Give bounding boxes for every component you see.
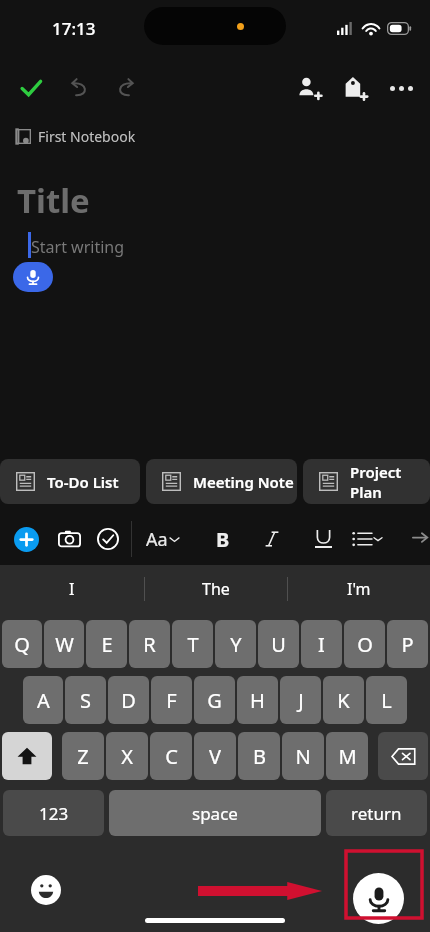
- button[interactable]: Add tag: [334, 67, 376, 109]
- staticText: J: [298, 687, 304, 714]
- button[interactable]: X: [106, 732, 148, 780]
- staticText: P: [401, 631, 414, 658]
- button[interactable]: [254, 521, 290, 557]
- button[interactable]: Z: [62, 732, 104, 780]
- staticText: First Notebook: [38, 127, 136, 146]
- button[interactable]: Dictate: [353, 873, 404, 924]
- button[interactable]: O: [344, 620, 385, 668]
- button[interactable]: W: [44, 620, 84, 668]
- staticText: Start writing: [31, 236, 125, 258]
- button[interactable]: The: [144, 565, 287, 613]
- button[interactable]: To-Do List: [0, 459, 140, 504]
- button[interactable]: List style: [352, 521, 382, 557]
- staticText: Z: [77, 743, 89, 770]
- staticText: S: [80, 687, 91, 714]
- staticText: I: [69, 578, 75, 600]
- staticText: G: [207, 687, 222, 714]
- staticText: Q: [14, 631, 30, 658]
- staticText: return: [351, 802, 402, 825]
- staticText: To-Do List: [47, 472, 119, 492]
- button[interactable]: B: [238, 732, 280, 780]
- button[interactable]: space: [109, 790, 321, 836]
- staticText: L: [381, 687, 392, 714]
- staticText: Y: [230, 631, 242, 658]
- button[interactable]: B: [205, 521, 241, 557]
- button[interactable]: Project Plan: [303, 459, 430, 504]
- button[interactable]: 123: [3, 790, 104, 836]
- staticText: W: [55, 631, 74, 658]
- button[interactable]: H: [237, 676, 278, 724]
- button[interactable]: K: [323, 676, 364, 724]
- button[interactable]: S: [65, 676, 106, 724]
- button[interactable]: Q: [2, 620, 42, 668]
- staticText: Project Plan: [350, 462, 430, 502]
- staticText: D: [121, 687, 136, 714]
- button[interactable]: Share with people: [288, 67, 330, 109]
- staticText: space: [192, 802, 238, 825]
- staticText: U: [271, 631, 286, 658]
- staticText: B: [216, 526, 230, 553]
- button[interactable]: L: [366, 676, 407, 724]
- button[interactable]: J: [280, 676, 321, 724]
- staticText: H: [250, 687, 265, 714]
- staticText: B: [253, 743, 266, 770]
- button[interactable]: N: [282, 732, 324, 780]
- staticText: I: [318, 631, 325, 658]
- button[interactable]: M: [326, 732, 368, 780]
- staticText: T: [187, 631, 199, 658]
- button[interactable]: Text style: [146, 519, 179, 559]
- staticText: O: [357, 631, 373, 658]
- staticText: X: [121, 743, 133, 770]
- button[interactable]: Add: [10, 523, 42, 555]
- button[interactable]: G: [194, 676, 235, 724]
- staticText: E: [101, 631, 113, 658]
- button[interactable]: First Notebook: [16, 122, 136, 150]
- button[interactable]: Undo: [58, 67, 100, 109]
- button[interactable]: Meeting Note: [146, 459, 297, 504]
- staticText: Aa: [146, 527, 168, 552]
- staticText: The: [202, 578, 230, 600]
- button[interactable]: Checklist: [92, 523, 124, 555]
- button[interactable]: T: [172, 620, 213, 668]
- button[interactable]: Camera: [52, 522, 86, 556]
- staticText: 123: [39, 802, 69, 825]
- staticText: 17:13: [52, 17, 96, 40]
- button[interactable]: I: [0, 565, 144, 613]
- staticText: C: [165, 743, 178, 770]
- button[interactable]: D: [108, 676, 149, 724]
- staticText: F: [166, 687, 177, 714]
- staticText: R: [143, 631, 156, 658]
- button[interactable]: C: [150, 732, 192, 780]
- button[interactable]: V: [194, 732, 236, 780]
- button[interactable]: I'm: [287, 565, 430, 613]
- staticText: I'm: [347, 578, 371, 600]
- staticText: V: [209, 743, 221, 770]
- button[interactable]: More options: [380, 67, 422, 109]
- button[interactable]: Emoji: [29, 873, 63, 907]
- staticText: K: [337, 687, 350, 714]
- button[interactable]: Done: [10, 67, 52, 109]
- button[interactable]: A: [23, 676, 63, 724]
- staticText: N: [295, 743, 311, 770]
- button[interactable]: Backspace: [378, 732, 428, 780]
- button[interactable]: I: [301, 620, 342, 668]
- button[interactable]: Indent: [411, 525, 430, 553]
- button[interactable]: R: [129, 620, 170, 668]
- button[interactable]: E: [86, 620, 127, 668]
- button[interactable]: [305, 521, 341, 557]
- staticText: M: [338, 743, 357, 770]
- button[interactable]: return: [326, 790, 427, 836]
- button[interactable]: F: [151, 676, 192, 724]
- button[interactable]: P: [387, 620, 428, 668]
- button[interactable]: Redo: [105, 67, 147, 109]
- staticText: Title: [17, 178, 90, 223]
- button[interactable]: Voice input: [13, 262, 53, 292]
- staticText: A: [37, 687, 50, 714]
- button[interactable]: Y: [215, 620, 256, 668]
- button[interactable]: U: [258, 620, 299, 668]
- staticText: Meeting Note: [193, 472, 294, 492]
- button[interactable]: Shift: [2, 732, 52, 780]
